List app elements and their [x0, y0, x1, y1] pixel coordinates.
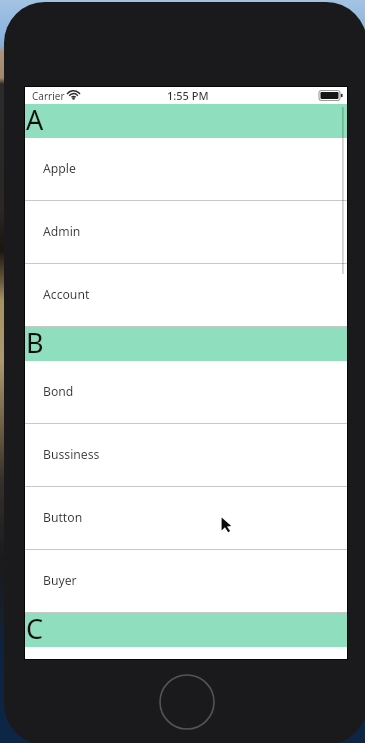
staticText: Bussiness [43, 446, 100, 463]
staticText: Bond [43, 383, 74, 400]
button[interactable]: Apple [25, 138, 347, 201]
staticText: Buyer [43, 572, 77, 589]
button[interactable]: Admin [25, 201, 347, 264]
staticText: A [26, 101, 44, 135]
staticText: Button [43, 509, 83, 526]
staticText: B [26, 324, 44, 358]
button[interactable]: Bussiness [25, 424, 347, 487]
other: Home [158, 673, 216, 731]
button[interactable]: Bond [25, 361, 347, 424]
button[interactable]: Button [25, 487, 347, 550]
staticText: Carrier [32, 89, 65, 103]
button[interactable]: C [25, 613, 347, 647]
button[interactable]: B [25, 327, 347, 361]
staticText: 1:55 PM [167, 88, 209, 103]
staticText: Admin [43, 223, 81, 240]
staticText: Apple [43, 160, 76, 177]
staticText: Account [43, 286, 90, 303]
button[interactable]: Account [25, 264, 347, 327]
button[interactable]: Buyer [25, 550, 347, 613]
staticText: C [26, 610, 44, 644]
button[interactable]: A [25, 104, 347, 138]
